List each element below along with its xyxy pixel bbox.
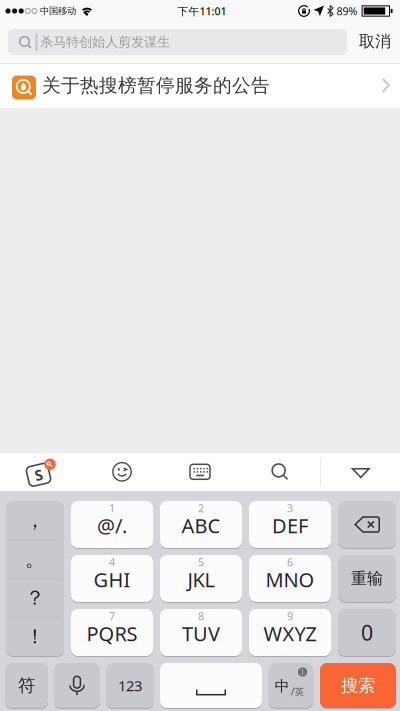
button[interactable]: 符 xyxy=(5,663,48,708)
staticText: WXYZ xyxy=(263,620,316,647)
staticText: @/. xyxy=(97,512,127,539)
staticText: 中 xyxy=(275,677,290,695)
button[interactable]: Delete xyxy=(338,501,396,548)
staticText: ， xyxy=(25,508,45,533)
staticText: 7 xyxy=(109,609,115,623)
button[interactable]: Keyboard xyxy=(180,453,220,491)
staticText: 8 xyxy=(198,609,204,623)
button[interactable]: 7 xyxy=(71,609,153,656)
staticText: PQRS xyxy=(86,620,137,647)
button[interactable]: 。 xyxy=(6,540,64,579)
staticText: 符 xyxy=(18,675,35,696)
staticText: 下午11:01 xyxy=(177,4,226,18)
staticText: 4 xyxy=(109,555,115,569)
staticText: TUV xyxy=(182,620,220,647)
button[interactable]: 4 xyxy=(71,555,153,602)
staticText: ABC xyxy=(181,512,220,539)
staticText: 重输 xyxy=(351,569,383,588)
staticText: 搜索 xyxy=(341,675,375,696)
staticText: 关于热搜榜暂停服务的公告 xyxy=(42,74,270,97)
button[interactable]: Sogou input xyxy=(25,458,57,486)
staticText: 。 xyxy=(25,547,45,571)
staticText: DEF xyxy=(272,512,308,539)
staticText: 英 xyxy=(295,686,304,698)
button[interactable]: 取消 xyxy=(351,20,399,63)
staticText: ？ xyxy=(25,586,45,610)
button[interactable]: Search xyxy=(260,453,300,491)
staticText: 取消 xyxy=(359,32,391,51)
button[interactable]: 重输 xyxy=(338,555,396,602)
staticText: / xyxy=(291,684,295,698)
button[interactable]: 2 xyxy=(160,501,242,548)
staticText: 中国移动 xyxy=(40,5,76,17)
staticText: 2 xyxy=(198,501,204,515)
button[interactable]: ， xyxy=(6,501,64,540)
button[interactable]: 5 xyxy=(160,555,242,602)
staticText: 5 xyxy=(198,555,204,569)
staticText: 杀马特创始人剪发谋生 xyxy=(40,34,170,50)
staticText: JKL xyxy=(187,566,214,593)
button[interactable]: 0 xyxy=(338,609,396,656)
staticText: S xyxy=(34,465,42,485)
button[interactable]: 中 xyxy=(269,663,313,708)
button[interactable]: 6 xyxy=(249,555,331,602)
button[interactable]: 3 xyxy=(249,501,331,548)
button[interactable]: 1 xyxy=(71,501,153,548)
button[interactable]: 123 xyxy=(106,663,154,708)
staticText: 123 xyxy=(118,676,142,695)
staticText: 0 xyxy=(361,618,373,647)
staticText: 9 xyxy=(287,609,293,623)
staticText: 89% xyxy=(336,4,357,18)
staticText: 3 xyxy=(287,501,293,515)
button[interactable]: ？ xyxy=(6,578,64,617)
staticText: MNO xyxy=(265,566,314,593)
button[interactable]: 关于热搜榜暂停服务的公告 xyxy=(0,63,400,108)
button[interactable]: 8 xyxy=(160,609,242,656)
staticText: 1 xyxy=(109,501,115,515)
button[interactable]: 9 xyxy=(249,609,331,656)
button[interactable]: Dictation xyxy=(54,663,100,708)
button[interactable]: Emoji xyxy=(102,453,142,491)
staticText: ！ xyxy=(25,624,45,649)
button[interactable]: Dismiss keyboard xyxy=(341,454,381,492)
staticText: 6 xyxy=(287,555,293,569)
button[interactable]: 杀马特创始人剪发谋生 xyxy=(8,29,347,55)
staticText: GHI xyxy=(93,566,130,593)
button[interactable]: 搜索 xyxy=(320,663,396,708)
button[interactable]: ！ xyxy=(6,617,64,656)
button[interactable]: Space xyxy=(160,663,262,708)
